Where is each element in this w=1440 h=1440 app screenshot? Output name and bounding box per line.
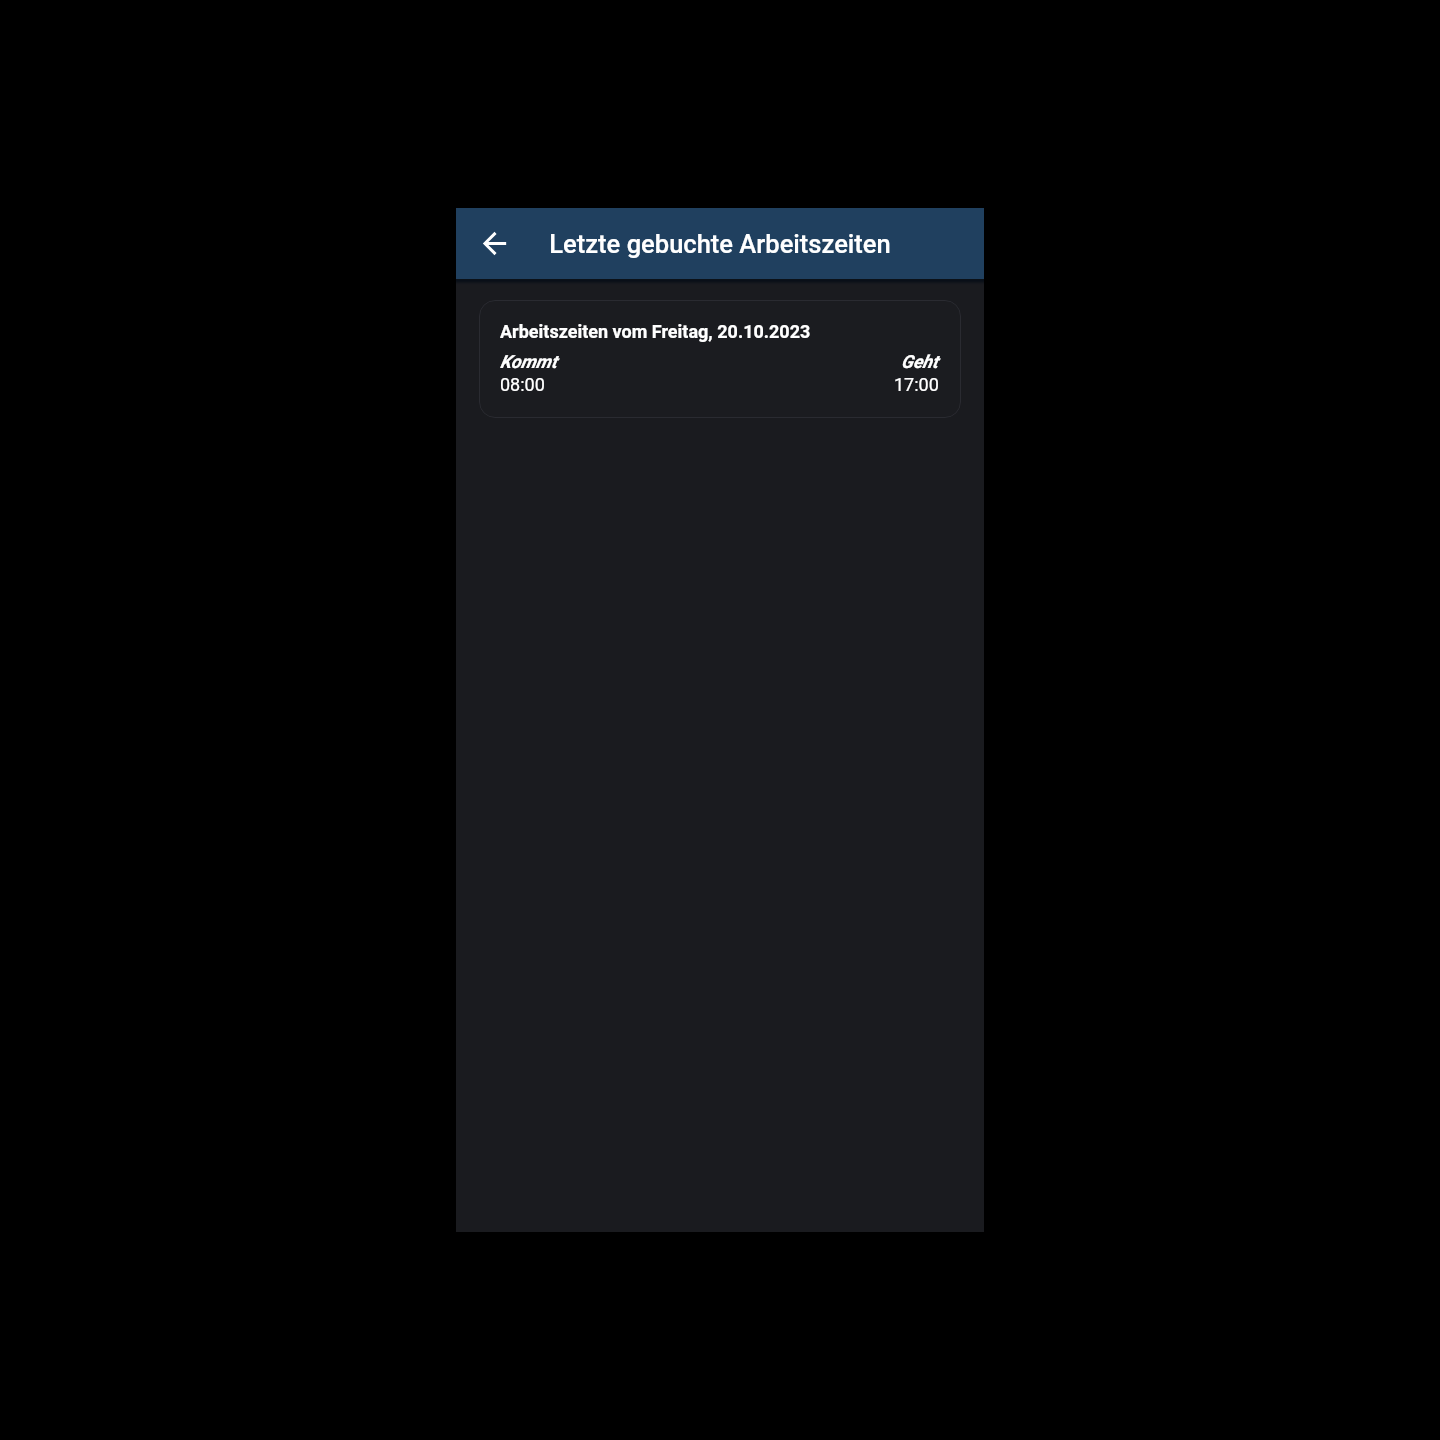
staticText: Letzte gebuchte Arbeitszeiten — [549, 229, 891, 259]
staticText: Kommt — [500, 351, 557, 372]
button[interactable]: Back — [470, 219, 518, 267]
button[interactable]: Arbeitszeiten vom Freitag, 20.10.2023 — [479, 300, 961, 418]
staticText: 17:00 — [894, 374, 939, 395]
staticText: Arbeitszeiten vom Freitag, 20.10.2023 — [500, 321, 811, 342]
staticText: 08:00 — [500, 374, 545, 395]
staticText: Geht — [901, 351, 939, 372]
